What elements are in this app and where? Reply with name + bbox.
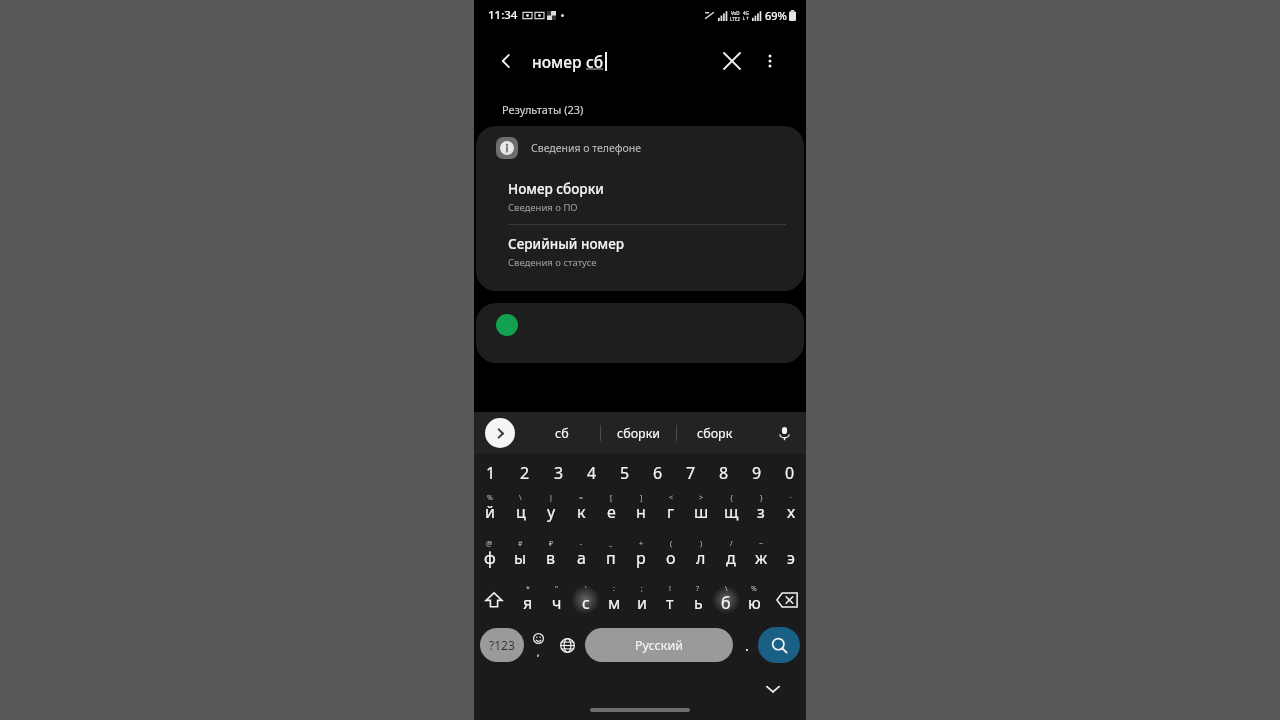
staticText: ч xyxy=(552,592,562,614)
button[interactable]: 0 xyxy=(773,460,806,486)
staticText: / xyxy=(730,539,733,549)
staticText: : xyxy=(613,584,615,594)
button[interactable]: Shift xyxy=(474,578,513,622)
button[interactable]: More options xyxy=(754,45,786,77)
staticText: 9 xyxy=(752,462,762,484)
staticText: х xyxy=(787,501,796,523)
button[interactable]: Back xyxy=(492,47,520,75)
button[interactable]: 8 xyxy=(707,460,740,486)
staticText: з xyxy=(757,501,765,523)
button[interactable]: < xyxy=(656,486,686,532)
staticText: < xyxy=(669,493,674,503)
button[interactable]: / xyxy=(716,532,746,578)
button[interactable]: э xyxy=(776,532,806,578)
staticText: , xyxy=(537,646,540,658)
button[interactable]: Русский xyxy=(585,628,733,662)
button[interactable]: @ xyxy=(474,532,505,578)
button[interactable]: · xyxy=(776,486,806,532)
button[interactable]: Номер сборки xyxy=(476,170,804,224)
staticText: % xyxy=(487,493,493,503)
button[interactable]: \ xyxy=(505,486,536,532)
button[interactable]: Change language xyxy=(552,622,582,668)
staticText: - xyxy=(580,539,583,549)
button[interactable]: Серийный номер xyxy=(476,225,804,279)
staticText: м xyxy=(608,592,621,614)
button[interactable]: 4 xyxy=(575,460,608,486)
button[interactable]: _ xyxy=(596,532,626,578)
staticText: 1 xyxy=(486,462,496,484)
button[interactable]: Voice input xyxy=(771,420,797,446)
button[interactable]: ?123 xyxy=(480,628,524,662)
staticText: сборк xyxy=(697,425,733,442)
button[interactable]: + xyxy=(626,532,656,578)
staticText: \ xyxy=(519,493,522,503)
button[interactable]: ] xyxy=(626,486,656,532)
staticText: | xyxy=(549,493,553,503)
staticText: Русский xyxy=(635,637,683,654)
button[interactable]: 2 xyxy=(508,460,542,486)
button[interactable]: Сведения о телефоне xyxy=(476,126,804,291)
button[interactable]: \ xyxy=(712,578,740,622)
staticText: Сведения о статусе xyxy=(508,256,597,269)
staticText: ж xyxy=(755,547,768,569)
staticText: сб xyxy=(586,51,604,72)
staticText: ; xyxy=(641,584,643,594)
button[interactable]: 6 xyxy=(641,460,674,486)
button[interactable]: Hide keyboard xyxy=(760,676,786,702)
button[interactable]: Clear xyxy=(716,45,748,77)
staticText: [ xyxy=(610,493,613,503)
button[interactable]: Backspace xyxy=(768,578,806,622)
button[interactable]: ' xyxy=(571,578,600,622)
staticText: ( xyxy=(670,539,673,549)
button[interactable] xyxy=(476,303,804,363)
staticText: п xyxy=(606,547,616,569)
button[interactable]: * xyxy=(513,578,542,622)
staticText: _ xyxy=(609,539,613,549)
button[interactable]: сб xyxy=(524,412,600,454)
staticText: щ xyxy=(724,501,739,523)
button[interactable]: = xyxy=(566,486,596,532)
button[interactable]: ? xyxy=(684,578,712,622)
button[interactable]: 5 xyxy=(608,460,641,486)
staticText: VoD xyxy=(731,10,740,16)
button[interactable]: 9 xyxy=(740,460,773,486)
button[interactable]: % xyxy=(740,578,768,622)
button[interactable]: # xyxy=(505,532,536,578)
button[interactable]: ; xyxy=(628,578,656,622)
staticText: · xyxy=(790,493,792,503)
button[interactable]: " xyxy=(542,578,571,622)
button[interactable]: ( xyxy=(656,532,686,578)
button[interactable]: 1 xyxy=(474,460,508,486)
staticText: ] xyxy=(640,493,643,503)
button[interactable]: > xyxy=(686,486,716,532)
staticText: ш xyxy=(694,501,709,523)
button[interactable]: Emoji xyxy=(524,622,552,668)
button[interactable]: 7 xyxy=(674,460,707,486)
staticText: б xyxy=(721,592,731,614)
button[interactable]: Expand toolbar xyxy=(485,418,515,448)
button[interactable]: } xyxy=(746,486,776,532)
staticText: Серийный номер xyxy=(508,235,625,253)
button[interactable]: ) xyxy=(686,532,716,578)
button[interactable]: сборки xyxy=(601,412,676,454)
staticText: ю xyxy=(748,592,761,614)
staticText: { xyxy=(730,493,733,503)
button[interactable]: 3 xyxy=(542,460,575,486)
staticText: сб xyxy=(555,425,569,442)
button[interactable]: - xyxy=(566,532,596,578)
button[interactable]: : xyxy=(600,578,628,622)
staticText: номер xyxy=(532,51,586,72)
button[interactable]: сборк xyxy=(677,412,752,454)
button[interactable]: ₽ xyxy=(536,532,566,578)
button[interactable]: ! xyxy=(656,578,684,622)
button[interactable]: [ xyxy=(596,486,626,532)
staticText: т xyxy=(666,592,674,614)
button[interactable]: . xyxy=(736,622,758,668)
button[interactable]: { xyxy=(716,486,746,532)
button[interactable]: | xyxy=(536,486,566,532)
staticText: 7 xyxy=(686,462,696,484)
button[interactable]: % xyxy=(474,486,505,532)
staticText: @ xyxy=(486,539,493,549)
button[interactable]: Search xyxy=(758,627,800,663)
button[interactable]: ~ xyxy=(746,532,776,578)
